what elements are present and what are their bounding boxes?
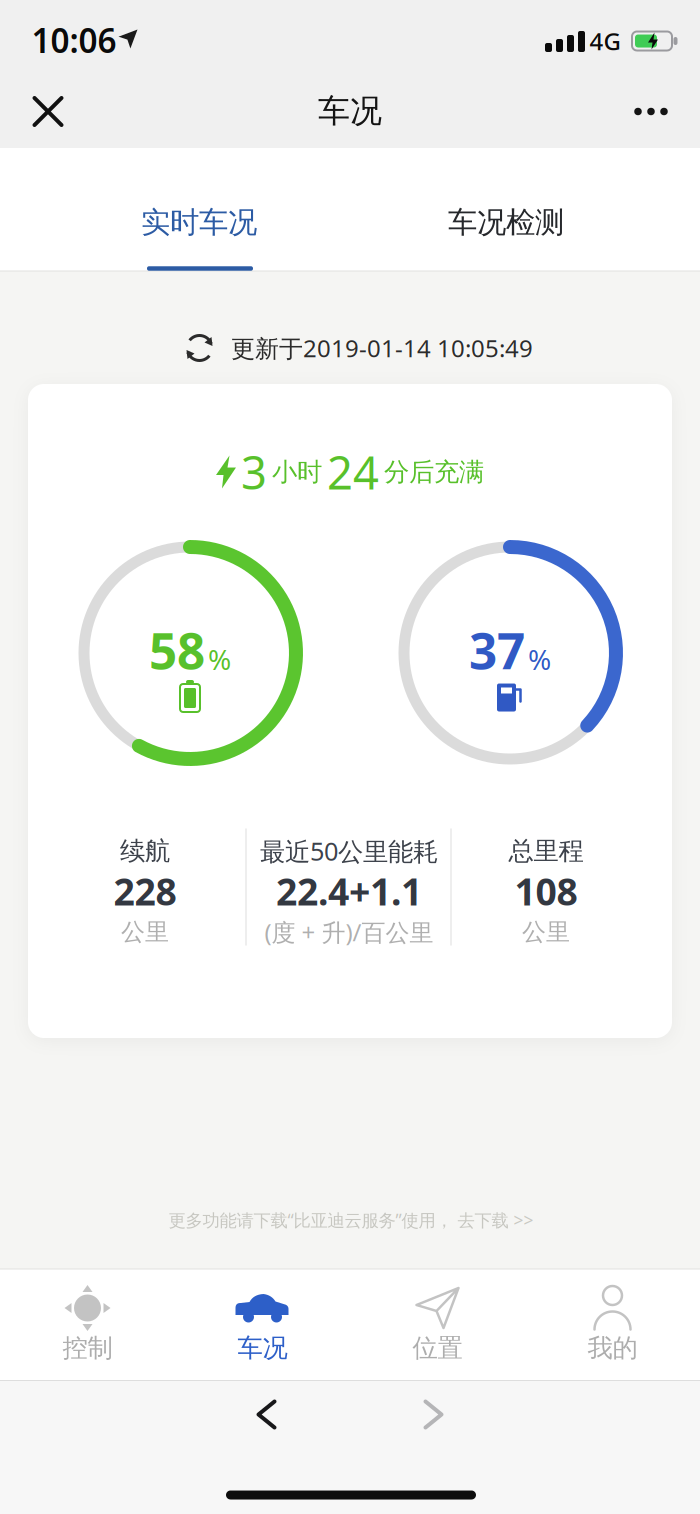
staticText: 37 bbox=[469, 617, 525, 683]
staticText: % bbox=[208, 641, 231, 678]
button[interactable]: 前进 bbox=[425, 1401, 442, 1428]
staticText: 车况检测 bbox=[448, 204, 564, 240]
staticText: 车况 bbox=[318, 91, 382, 131]
button[interactable]: 去下载 >> bbox=[452, 1208, 533, 1231]
staticText: 总里程 bbox=[508, 835, 583, 866]
staticText: 车况 bbox=[237, 1332, 287, 1363]
staticText: 我的 bbox=[587, 1332, 637, 1363]
staticText: 24 bbox=[327, 442, 379, 502]
staticText: 4G bbox=[589, 25, 620, 57]
staticText: % bbox=[528, 641, 551, 678]
staticText: 最近50公里能耗 bbox=[260, 834, 438, 868]
button[interactable]: 实时车况 bbox=[54, 148, 344, 271]
button[interactable]: 控制 bbox=[0, 1270, 174, 1380]
button[interactable]: 位置 bbox=[350, 1270, 524, 1380]
staticText: 3 bbox=[241, 442, 267, 502]
staticText: 续航 bbox=[120, 835, 170, 866]
staticText: 10:06 bbox=[31, 18, 116, 62]
staticText: 更多功能请下载“比亚迪云服务”使用， bbox=[168, 1208, 452, 1231]
staticText: 22.4+1.1 bbox=[276, 866, 422, 916]
button[interactable]: 刷新 bbox=[183, 326, 533, 370]
staticText: 更新于2019-01-14 10:05:49 bbox=[231, 332, 533, 364]
staticText: 58 bbox=[149, 617, 205, 683]
button[interactable]: 车况 bbox=[175, 1270, 349, 1380]
button[interactable]: 我的 bbox=[525, 1270, 699, 1380]
button[interactable]: 返回 bbox=[258, 1401, 275, 1428]
staticText: 分后充满 bbox=[384, 456, 484, 487]
staticText: 实时车况 bbox=[141, 204, 257, 240]
button[interactable]: 关闭 bbox=[23, 87, 72, 136]
button[interactable]: 更多 bbox=[623, 89, 679, 133]
staticText: 公里 bbox=[522, 917, 570, 947]
staticText: 位置 bbox=[412, 1332, 462, 1363]
staticText: 公里 bbox=[121, 917, 169, 947]
staticText: 228 bbox=[113, 866, 176, 916]
staticText: 小时 bbox=[272, 456, 322, 487]
staticText: 108 bbox=[514, 866, 577, 916]
button[interactable]: 车况检测 bbox=[361, 148, 651, 271]
staticText: 去下载 >> bbox=[452, 1208, 533, 1231]
staticText: 控制 bbox=[62, 1332, 112, 1363]
staticText: (度 + 升)/百公里 bbox=[264, 916, 433, 948]
